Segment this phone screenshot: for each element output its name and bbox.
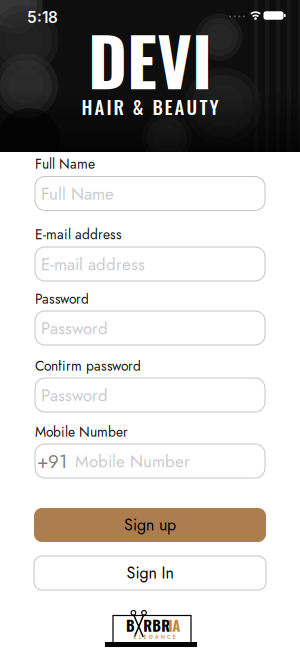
button[interactable]: Mobile Number [35, 444, 265, 478]
staticText: Full Name [35, 154, 95, 174]
staticText: E-mail address [41, 252, 145, 277]
button[interactable]: E-mail address [35, 247, 265, 281]
staticText: Password [35, 289, 89, 309]
button[interactable]: Password [35, 311, 265, 345]
staticText: Sign up [124, 513, 176, 536]
staticText: Password [41, 316, 108, 341]
button[interactable]: Password [35, 378, 265, 412]
button[interactable]: Sign In [34, 556, 266, 590]
staticText: Mobile Number [35, 422, 128, 442]
staticText: Sign In [126, 561, 173, 584]
staticText: RBR [143, 614, 170, 636]
staticText: ELEGANCE [112, 629, 197, 645]
staticText: IA [168, 614, 180, 636]
staticText: B [126, 614, 135, 636]
staticText: HAIR & BEAUTY [81, 93, 218, 120]
staticText: 5:18 [27, 8, 58, 27]
staticText: E-mail address [35, 225, 122, 244]
button[interactable]: Full Name [35, 176, 265, 210]
staticText: Confirm password [35, 356, 141, 376]
staticText: +91 [37, 448, 67, 475]
staticText: Full Name [41, 182, 114, 206]
staticText: Password [41, 383, 108, 408]
button[interactable]: Sign up [34, 508, 266, 542]
staticText: DEVI [88, 10, 212, 108]
staticText: Mobile Number [75, 449, 190, 474]
